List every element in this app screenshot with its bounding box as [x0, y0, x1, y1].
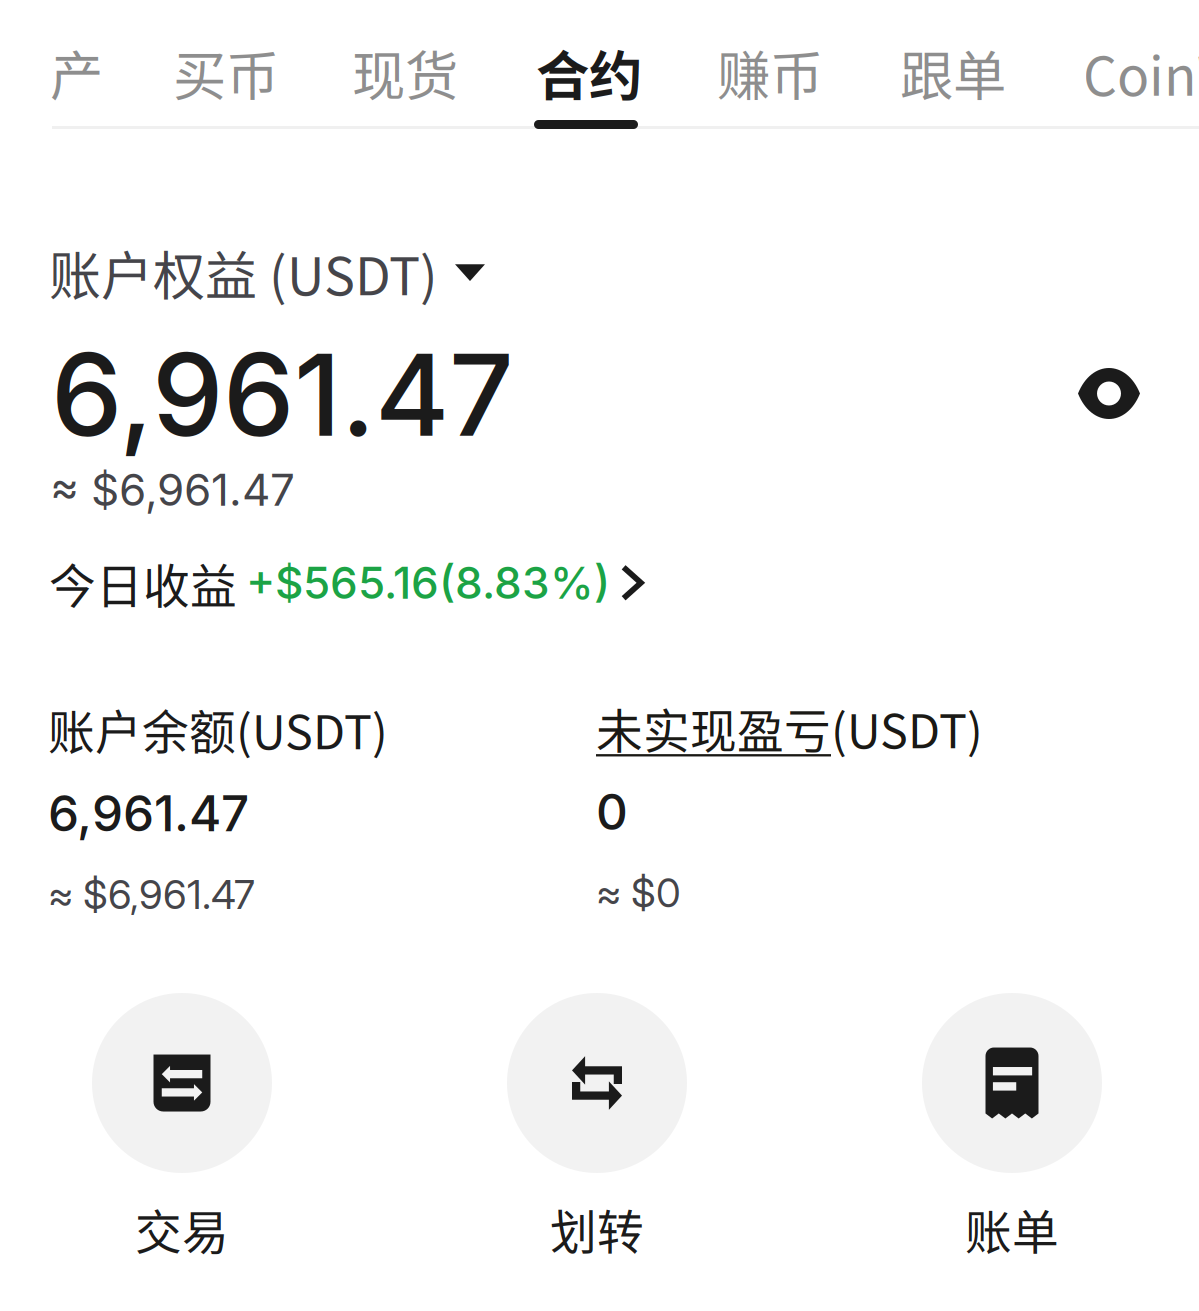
- button[interactable]: 账单: [922, 993, 1102, 1263]
- staticText: 赚币: [717, 34, 823, 111]
- button[interactable]: 划转: [507, 993, 687, 1263]
- staticText: 账户余额(USDT): [48, 695, 388, 763]
- staticText: 合约: [536, 34, 642, 111]
- staticText: 划转: [550, 1195, 644, 1263]
- staticText: 跟单: [900, 34, 1006, 111]
- staticText: 账户权益 (USDT): [49, 235, 438, 310]
- button[interactable]: 现货: [346, 16, 464, 142]
- staticText: ≈ $0: [596, 869, 681, 917]
- button[interactable]: 跟单: [894, 16, 1012, 142]
- button[interactable]: 隐藏金额: [1060, 350, 1158, 437]
- staticText: 未实现盈亏(USDT): [596, 695, 983, 761]
- staticText: 6,961.47: [51, 326, 514, 463]
- staticText: 今日收益: [49, 549, 237, 617]
- button[interactable]: CoinW: [1077, 16, 1199, 142]
- staticText: 0: [596, 782, 628, 842]
- staticText: ≈ $6,961.47: [48, 870, 255, 919]
- button[interactable]: 赚币: [711, 16, 829, 142]
- staticText: +$565.16(8.83%): [246, 556, 610, 609]
- staticText: CoinW: [1083, 34, 1199, 111]
- button[interactable]: 产: [44, 16, 109, 142]
- staticText: 账单: [965, 1195, 1059, 1263]
- staticText: ≈ $6,961.47: [50, 463, 295, 516]
- staticText: 现货: [352, 34, 458, 111]
- staticText: 交易: [135, 1195, 229, 1263]
- staticText: 产: [50, 34, 103, 111]
- button[interactable]: 账户权益 (USDT): [49, 235, 485, 310]
- staticText: 6,961.47: [48, 784, 249, 843]
- button[interactable]: 合约: [530, 16, 648, 142]
- staticText: 买币: [173, 34, 279, 111]
- button[interactable]: 买币: [167, 16, 285, 142]
- button[interactable]: 今日收益: [49, 549, 644, 617]
- button[interactable]: 交易: [92, 993, 272, 1263]
